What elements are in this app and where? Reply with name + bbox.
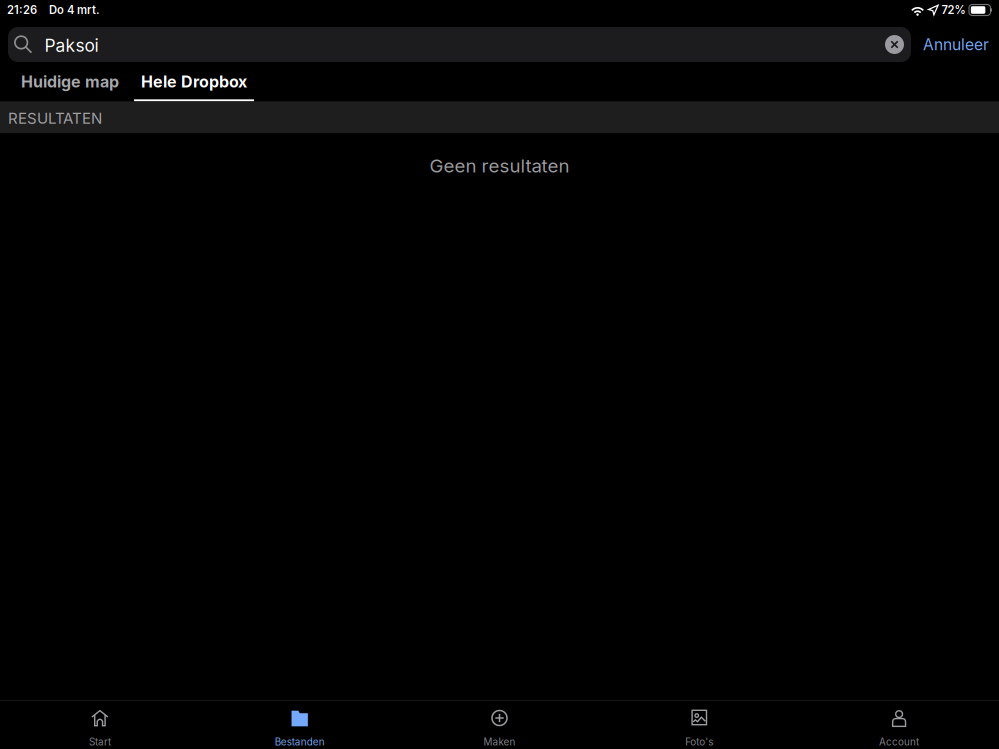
- staticText: Paksoi: [44, 35, 98, 56]
- button[interactable]: Hele Dropbox: [130, 62, 258, 101]
- staticText: Maken: [483, 736, 515, 748]
- staticText: Geen resultaten: [429, 154, 569, 177]
- button[interactable]: Start: [0, 701, 200, 749]
- staticText: Huidige map: [21, 72, 119, 91]
- staticText: Hele Dropbox: [141, 72, 247, 91]
- staticText: Start: [89, 736, 111, 748]
- staticText: 72%: [941, 3, 965, 17]
- staticText: Annuleer: [923, 35, 989, 54]
- button[interactable]: Foto's: [599, 701, 799, 749]
- button[interactable]: Annuleer: [911, 27, 999, 62]
- staticText: Account: [879, 736, 919, 748]
- button[interactable]: Bestanden: [200, 701, 400, 749]
- staticText: Do 4 mrt.: [49, 3, 100, 17]
- staticText: Foto's: [685, 736, 713, 748]
- button[interactable]: Zoekopdracht wissen: [875, 27, 911, 62]
- button[interactable]: Account: [799, 701, 999, 749]
- staticText: Bestanden: [275, 736, 325, 748]
- button[interactable]: Maken: [400, 701, 599, 749]
- staticText: 21:26: [7, 3, 37, 17]
- button[interactable]: Huidige map: [10, 62, 130, 101]
- staticText: RESULTATEN: [8, 109, 102, 127]
